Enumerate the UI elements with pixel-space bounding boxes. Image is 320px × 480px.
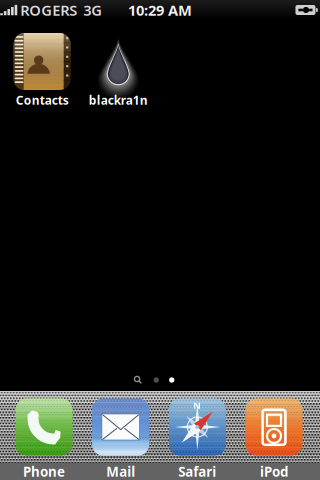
staticText: 10:29 AM [128,0,192,20]
button[interactable] [92,398,149,455]
button[interactable]: N [169,398,226,455]
staticText: 3G [83,0,102,20]
staticText: Contacts [16,92,69,108]
staticText: Phone [23,463,65,480]
staticText: N [193,399,201,411]
button[interactable]: Contacts [4,33,80,106]
button[interactable] [245,398,302,455]
button[interactable] [15,398,72,455]
button[interactable]: Search [131,373,145,387]
staticText: Mail [106,463,135,480]
staticText: blackra1n [89,92,148,108]
button[interactable]: blackra1n [80,33,156,106]
staticText: Safari [178,463,216,480]
staticText: iPod [260,463,288,480]
staticText: ROGERS [20,0,77,20]
